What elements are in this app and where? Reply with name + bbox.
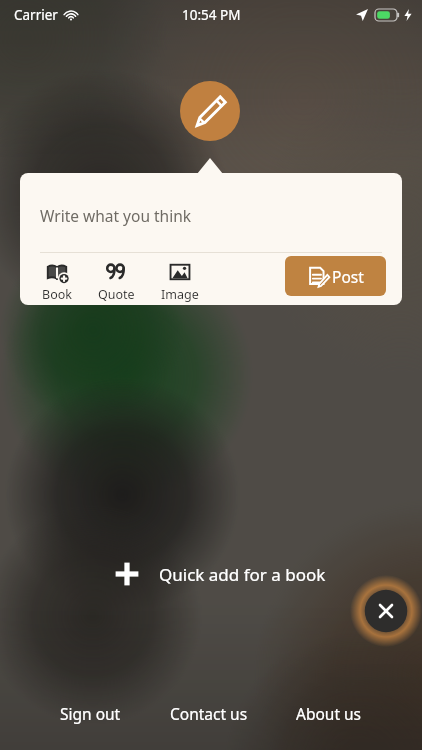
staticText: Write what you think (40, 205, 192, 226)
staticText: Carrier (14, 6, 58, 24)
button[interactable]: Close (350, 575, 422, 647)
button[interactable]: Image (159, 261, 201, 303)
button[interactable]: Write a post (180, 81, 240, 141)
staticText: Quote (98, 286, 135, 303)
staticText: Image (161, 286, 199, 303)
button[interactable]: Post (285, 256, 386, 296)
staticText: Book (42, 286, 72, 303)
button[interactable]: Quote (96, 261, 137, 303)
button[interactable]: Quick add for a book (112, 552, 326, 596)
staticText: Quick add for a book (159, 563, 326, 586)
button[interactable]: Sign out (56, 695, 125, 732)
staticText: Sign out (60, 703, 121, 724)
button[interactable]: About us (292, 695, 366, 732)
staticText: Post (332, 266, 364, 287)
button[interactable]: Book (40, 261, 74, 303)
button[interactable]: Write what you think (20, 173, 402, 252)
staticText: Contact us (170, 703, 248, 724)
staticText: About us (296, 703, 362, 724)
staticText: 10:54 PM (182, 6, 241, 24)
button[interactable]: Contact us (166, 695, 252, 732)
